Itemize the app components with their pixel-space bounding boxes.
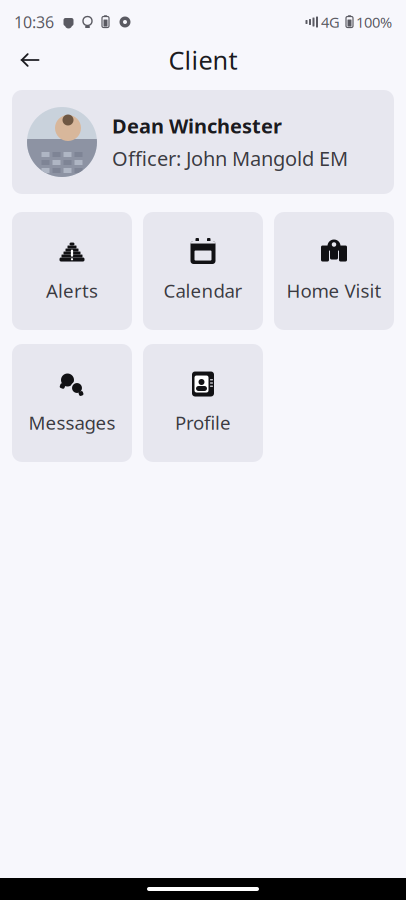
staticText: Messages: [28, 410, 115, 435]
button[interactable]: Alerts: [12, 212, 132, 330]
button[interactable]: Calendar: [143, 212, 263, 330]
button[interactable]: Messages: [12, 344, 132, 462]
staticText: Client: [168, 43, 237, 77]
button[interactable]: Dean Winchester: [12, 90, 394, 194]
button[interactable]: Profile: [143, 344, 263, 462]
staticText: 10:36: [14, 11, 54, 33]
button[interactable]: Home Visit: [274, 212, 394, 330]
staticText: Officer: John Mangold EM: [112, 145, 348, 172]
staticText: Home Visit: [286, 278, 381, 303]
staticText: 100%: [356, 12, 392, 32]
staticText: 4G: [321, 12, 340, 32]
staticText: Dean Winchester: [112, 112, 282, 139]
staticText: Alerts: [46, 278, 98, 303]
staticText: Profile: [175, 410, 231, 435]
button[interactable]: Back: [8, 38, 52, 82]
staticText: Calendar: [163, 278, 242, 303]
